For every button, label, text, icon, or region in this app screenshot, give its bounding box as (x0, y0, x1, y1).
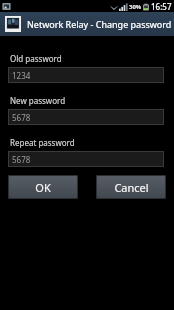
staticText: 30% (129, 3, 142, 11)
button[interactable]: 1234 (8, 67, 164, 83)
staticText: 5678 (12, 112, 31, 123)
staticText: 5678 (12, 154, 31, 165)
button[interactable]: Cancel (96, 175, 166, 199)
button[interactable]: OK (8, 175, 78, 199)
staticText: Old password (10, 53, 62, 64)
button[interactable]: 5678 (8, 109, 164, 125)
staticText: 1234 (12, 70, 31, 81)
staticText: Network Relay - Change password (27, 18, 172, 30)
button[interactable]: 5678 (8, 151, 164, 167)
staticText: New password (10, 95, 66, 106)
staticText: Cancel (114, 180, 149, 195)
staticText: 16:57 (151, 1, 172, 12)
staticText: OK (35, 180, 51, 195)
staticText: Repeat password (10, 137, 75, 148)
